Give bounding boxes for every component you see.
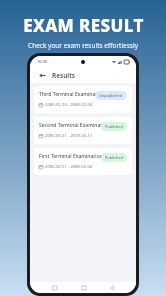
staticText: Second Terminal Examination [39, 122, 110, 129]
staticText: 2080-05-21 - 2079-04-11 [45, 133, 93, 139]
staticText: Check your exam results effortlessly [28, 41, 138, 50]
staticText: 2080-02-51 - 2080-05-04 [45, 164, 93, 170]
button[interactable]: Recents [50, 283, 59, 292]
staticText: Unpublished [99, 93, 123, 98]
button[interactable]: Home [79, 283, 88, 292]
staticText: First Terminal Examination [39, 153, 103, 160]
button[interactable]: Third Terminal Examination [34, 86, 132, 113]
staticText: Third Terminal Examination [39, 91, 105, 98]
staticText: Results [52, 71, 76, 80]
button[interactable]: Second Terminal Examination [34, 117, 132, 144]
staticText: EXAM RESULT [23, 14, 144, 37]
staticText: Published [105, 124, 123, 129]
staticText: Published [105, 155, 123, 160]
button[interactable]: Back [37, 70, 47, 80]
staticText: 2080-01-20 - 2080-02-04 [45, 102, 93, 108]
staticText: 10:30 [37, 59, 48, 64]
button[interactable]: Back [107, 283, 116, 292]
button[interactable]: First Terminal Examination [34, 148, 132, 175]
